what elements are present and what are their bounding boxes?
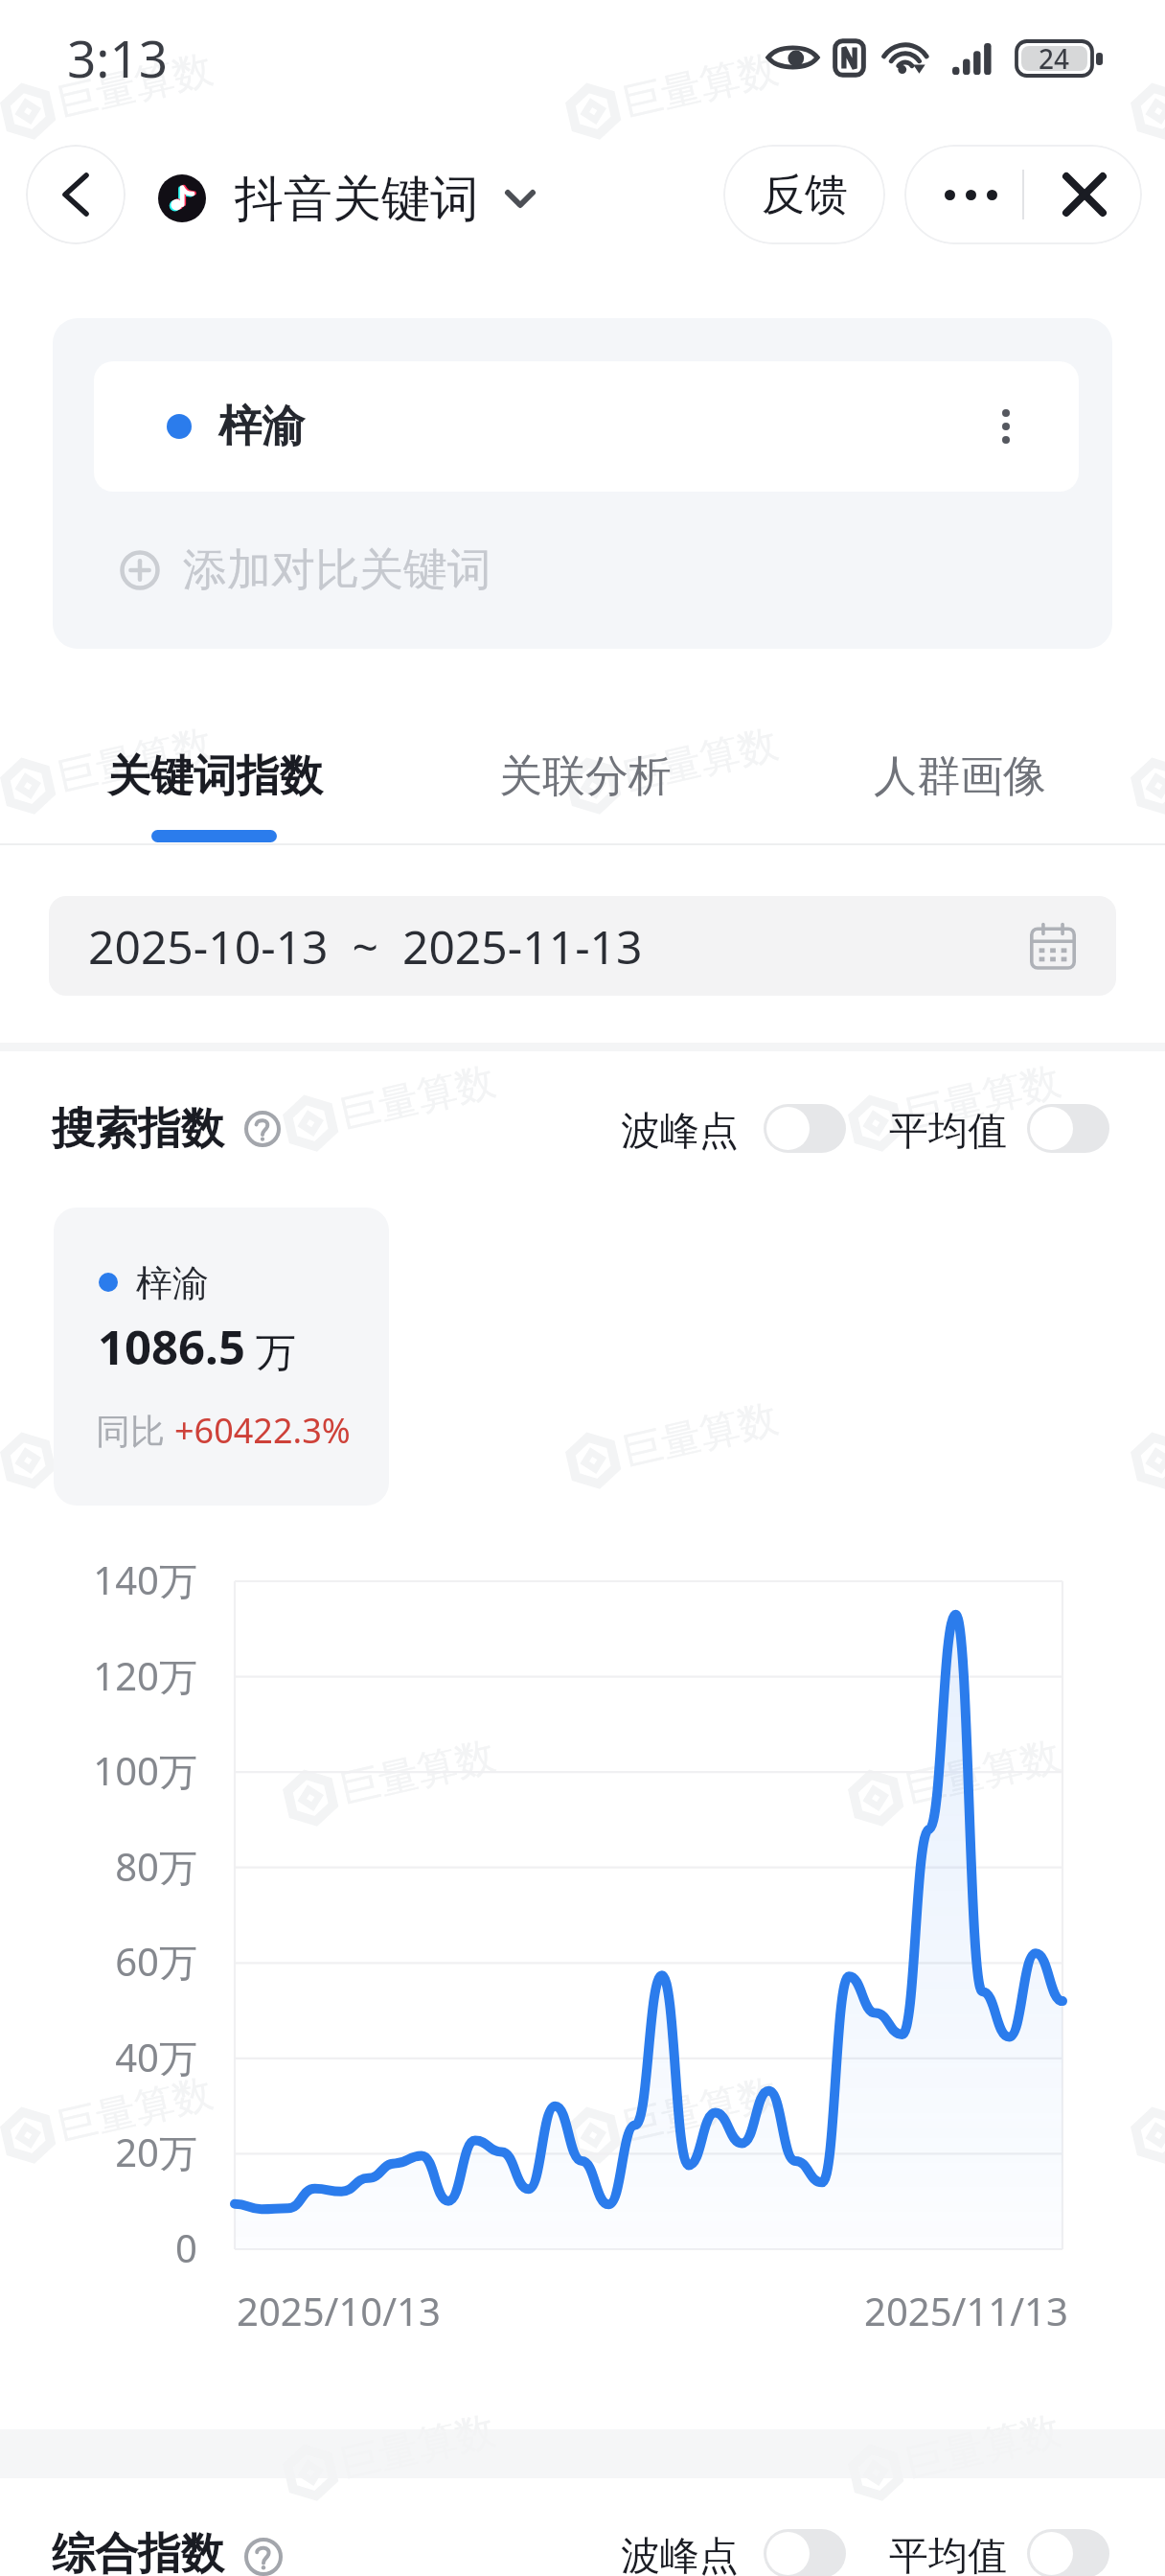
- staticText: 2025-10-13 ~ 2025-11-13: [88, 915, 643, 977]
- staticText: 巨量算数: [618, 1394, 783, 1478]
- staticText: 抖音关键词: [235, 169, 479, 230]
- staticText: 反馈: [762, 168, 848, 222]
- staticText: 巨量算数: [53, 719, 217, 803]
- staticText: 万: [256, 1328, 296, 1379]
- staticText: 3:13: [67, 23, 169, 92]
- staticText: 平均值: [889, 2532, 1007, 2576]
- button[interactable]: Toggle: [1027, 1104, 1109, 1153]
- staticText: 巨量算数: [618, 719, 783, 803]
- staticText: 巨量算数: [901, 1057, 1065, 1141]
- button[interactable]: 2025-10-13 ~ 2025-11-13: [49, 896, 1116, 996]
- staticText: 梓渝: [136, 1260, 209, 1306]
- button[interactable]: 梓渝: [94, 361, 1079, 492]
- staticText: +60422.3%: [174, 1407, 351, 1454]
- staticText: 1086.5: [98, 1315, 245, 1379]
- staticText: 波峰点: [621, 2532, 739, 2576]
- button[interactable]: 关联分析: [499, 749, 672, 804]
- staticText: 平均值: [889, 1107, 1007, 1157]
- staticText: 巨量算数: [618, 45, 783, 129]
- staticText: 巨量算数: [901, 1731, 1065, 1815]
- staticText: 140万: [93, 1553, 197, 1606]
- staticText: 巨量算数: [53, 45, 217, 129]
- staticText: 巨量算数: [336, 1731, 500, 1815]
- staticText: 80万: [115, 1840, 197, 1893]
- button[interactable]: Toggle: [764, 1104, 846, 1153]
- staticText: 巨量算数: [901, 382, 1065, 466]
- staticText: 梓渝: [218, 400, 305, 454]
- staticText: 巨量算数: [618, 2069, 783, 2153]
- staticText: 巨量算数: [53, 1394, 217, 1478]
- staticText: 综合指数: [52, 2527, 224, 2576]
- staticText: 波峰点: [621, 1107, 739, 1157]
- button[interactable]: 反馈: [723, 145, 885, 244]
- button[interactable]: 人群画像: [874, 749, 1046, 804]
- staticText: 2025/10/13: [237, 2285, 441, 2336]
- button[interactable]: 关键词指数: [107, 749, 323, 804]
- staticText: 120万: [93, 1649, 197, 1702]
- staticText: 0: [175, 2221, 197, 2273]
- button[interactable]: Close: [1024, 145, 1142, 244]
- button[interactable]: More options: [904, 145, 1022, 244]
- button[interactable]: 添加对比关键词: [94, 492, 1079, 649]
- staticText: 60万: [115, 1935, 197, 1988]
- staticText: 100万: [93, 1744, 197, 1797]
- staticText: 40万: [115, 2031, 197, 2083]
- button[interactable]: Toggle: [1027, 2529, 1109, 2576]
- staticText: 添加对比关键词: [183, 542, 491, 598]
- staticText: 巨量算数: [53, 2069, 217, 2153]
- button[interactable]: Back: [26, 145, 126, 244]
- staticText: 20万: [115, 2126, 197, 2178]
- button[interactable]: Toggle: [764, 2529, 846, 2576]
- staticText: 24: [1039, 40, 1070, 75]
- staticText: 巨量算数: [901, 2406, 1065, 2490]
- staticText: 搜索指数: [52, 1102, 224, 1157]
- staticText: 2025/11/13: [864, 2285, 1068, 2336]
- staticText: 同比: [96, 1407, 174, 1454]
- staticText: 巨量算数: [336, 2406, 500, 2490]
- staticText: 巨量算数: [336, 1057, 500, 1141]
